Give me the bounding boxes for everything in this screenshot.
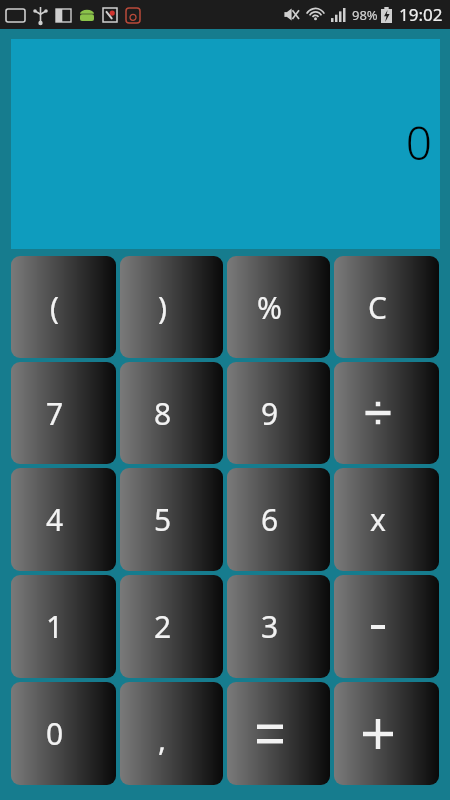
button[interactable]: 8 xyxy=(120,362,223,464)
staticText: 5 xyxy=(154,499,172,540)
staticText: 19:02 xyxy=(399,3,443,26)
staticText: 3 xyxy=(261,606,279,647)
button[interactable]: + xyxy=(334,682,439,785)
button[interactable]: - xyxy=(334,575,439,678)
staticText: 8 xyxy=(154,393,172,434)
staticText: 4 xyxy=(46,499,64,540)
staticText: % xyxy=(257,287,282,328)
button[interactable]: 3 xyxy=(227,575,330,678)
button[interactable]: , xyxy=(120,682,223,785)
button[interactable]: 5 xyxy=(120,468,223,571)
button[interactable]: C xyxy=(334,256,439,358)
staticText: 0 xyxy=(405,111,432,174)
button[interactable]: = xyxy=(227,682,330,785)
staticText: 6 xyxy=(261,499,279,540)
staticText: 9 xyxy=(261,393,279,434)
staticText: 0 xyxy=(46,713,64,754)
staticText: , xyxy=(158,719,167,760)
button[interactable]: ÷ xyxy=(334,362,439,464)
button[interactable]: ( xyxy=(11,256,116,358)
button[interactable]: 9 xyxy=(227,362,330,464)
staticText: 98% xyxy=(352,6,378,24)
button[interactable]: x xyxy=(334,468,439,571)
button[interactable]: 4 xyxy=(11,468,116,571)
staticText: 2 xyxy=(154,606,172,647)
staticText: C xyxy=(368,287,387,328)
button[interactable]: 6 xyxy=(227,468,330,571)
button[interactable]: ) xyxy=(120,256,223,358)
button[interactable]: % xyxy=(227,256,330,358)
button[interactable]: 0 xyxy=(11,682,116,785)
button[interactable]: 1 xyxy=(11,575,116,678)
staticText: ( xyxy=(50,287,59,328)
button[interactable]: 2 xyxy=(120,575,223,678)
button[interactable]: 7 xyxy=(11,362,116,464)
staticText: 7 xyxy=(46,393,64,434)
staticText: ) xyxy=(158,287,167,328)
staticText: 1 xyxy=(46,606,64,647)
staticText: x xyxy=(370,499,386,540)
